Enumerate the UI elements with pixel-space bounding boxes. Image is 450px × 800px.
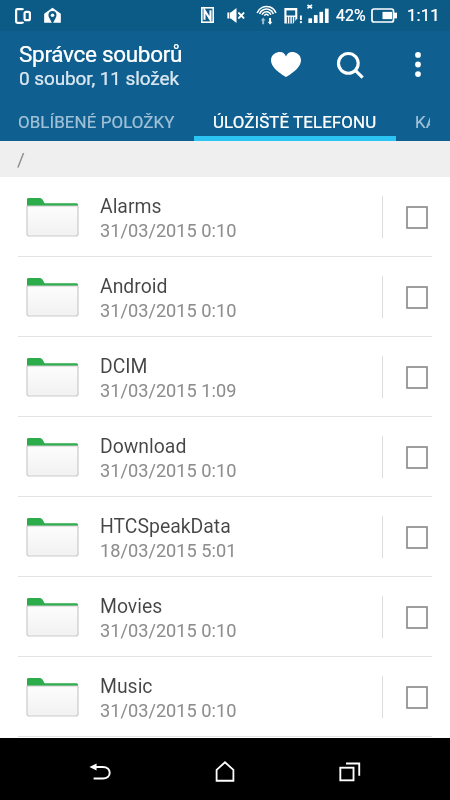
button[interactable]: Favorites	[255, 31, 317, 98]
staticText: /	[17, 148, 25, 170]
staticText: 1:11	[407, 5, 440, 25]
staticText: 18/03/2015 5:01	[100, 540, 237, 561]
button[interactable]: Select	[383, 657, 450, 737]
button[interactable]: DCIM	[0, 337, 450, 417]
staticText: ÚLOŽIŠTĚ TELEFONU	[213, 112, 377, 132]
staticText: KARTA SD	[415, 112, 430, 132]
staticText: 0 soubor, 11 složek	[19, 67, 180, 89]
button[interactable]: Back	[68, 738, 132, 800]
staticText: Správce souborů	[19, 41, 183, 67]
button[interactable]: /	[0, 141, 450, 177]
button[interactable]: Android	[0, 257, 450, 337]
button[interactable]: ÚLOŽIŠTĚ TELEFONU	[194, 98, 396, 141]
staticText: 42%	[336, 6, 366, 25]
staticText: Download	[100, 435, 187, 458]
button[interactable]: Alarms	[0, 177, 450, 257]
button[interactable]: Home	[193, 738, 257, 800]
staticText: Alarms	[100, 195, 162, 218]
button[interactable]: OBLÍBENÉ POLOŽKY	[0, 98, 194, 141]
staticText: 31/03/2015 0:10	[100, 300, 237, 321]
staticText: Music	[100, 675, 153, 698]
staticText: HTCSpeakData	[100, 515, 231, 538]
button[interactable]: Music	[0, 657, 450, 737]
staticText: DCIM	[100, 355, 148, 378]
staticText: 31/03/2015 0:10	[100, 700, 237, 721]
staticText: 31/03/2015 0:10	[100, 220, 237, 241]
staticText: 31/03/2015 1:09	[100, 380, 237, 401]
button[interactable]: More options	[392, 31, 442, 98]
button[interactable]: Download	[0, 417, 450, 497]
button[interactable]: Select	[383, 497, 450, 577]
button[interactable]: Select	[383, 177, 450, 257]
button[interactable]: KARTA SD	[396, 98, 449, 141]
button[interactable]: HTCSpeakData	[0, 497, 450, 577]
staticText: 31/03/2015 0:10	[100, 460, 237, 481]
button[interactable]: Search	[319, 31, 379, 98]
staticText: Movies	[100, 595, 163, 618]
button[interactable]: Recents	[318, 738, 382, 800]
button[interactable]: Select	[383, 417, 450, 497]
button[interactable]: Select	[383, 577, 450, 657]
staticText: Android	[100, 275, 168, 298]
button[interactable]: Select	[383, 257, 450, 337]
button[interactable]: Movies	[0, 577, 450, 657]
staticText: OBLÍBENÉ POLOŽKY	[18, 112, 175, 132]
button[interactable]: Select	[383, 337, 450, 417]
staticText: 31/03/2015 0:10	[100, 620, 237, 641]
